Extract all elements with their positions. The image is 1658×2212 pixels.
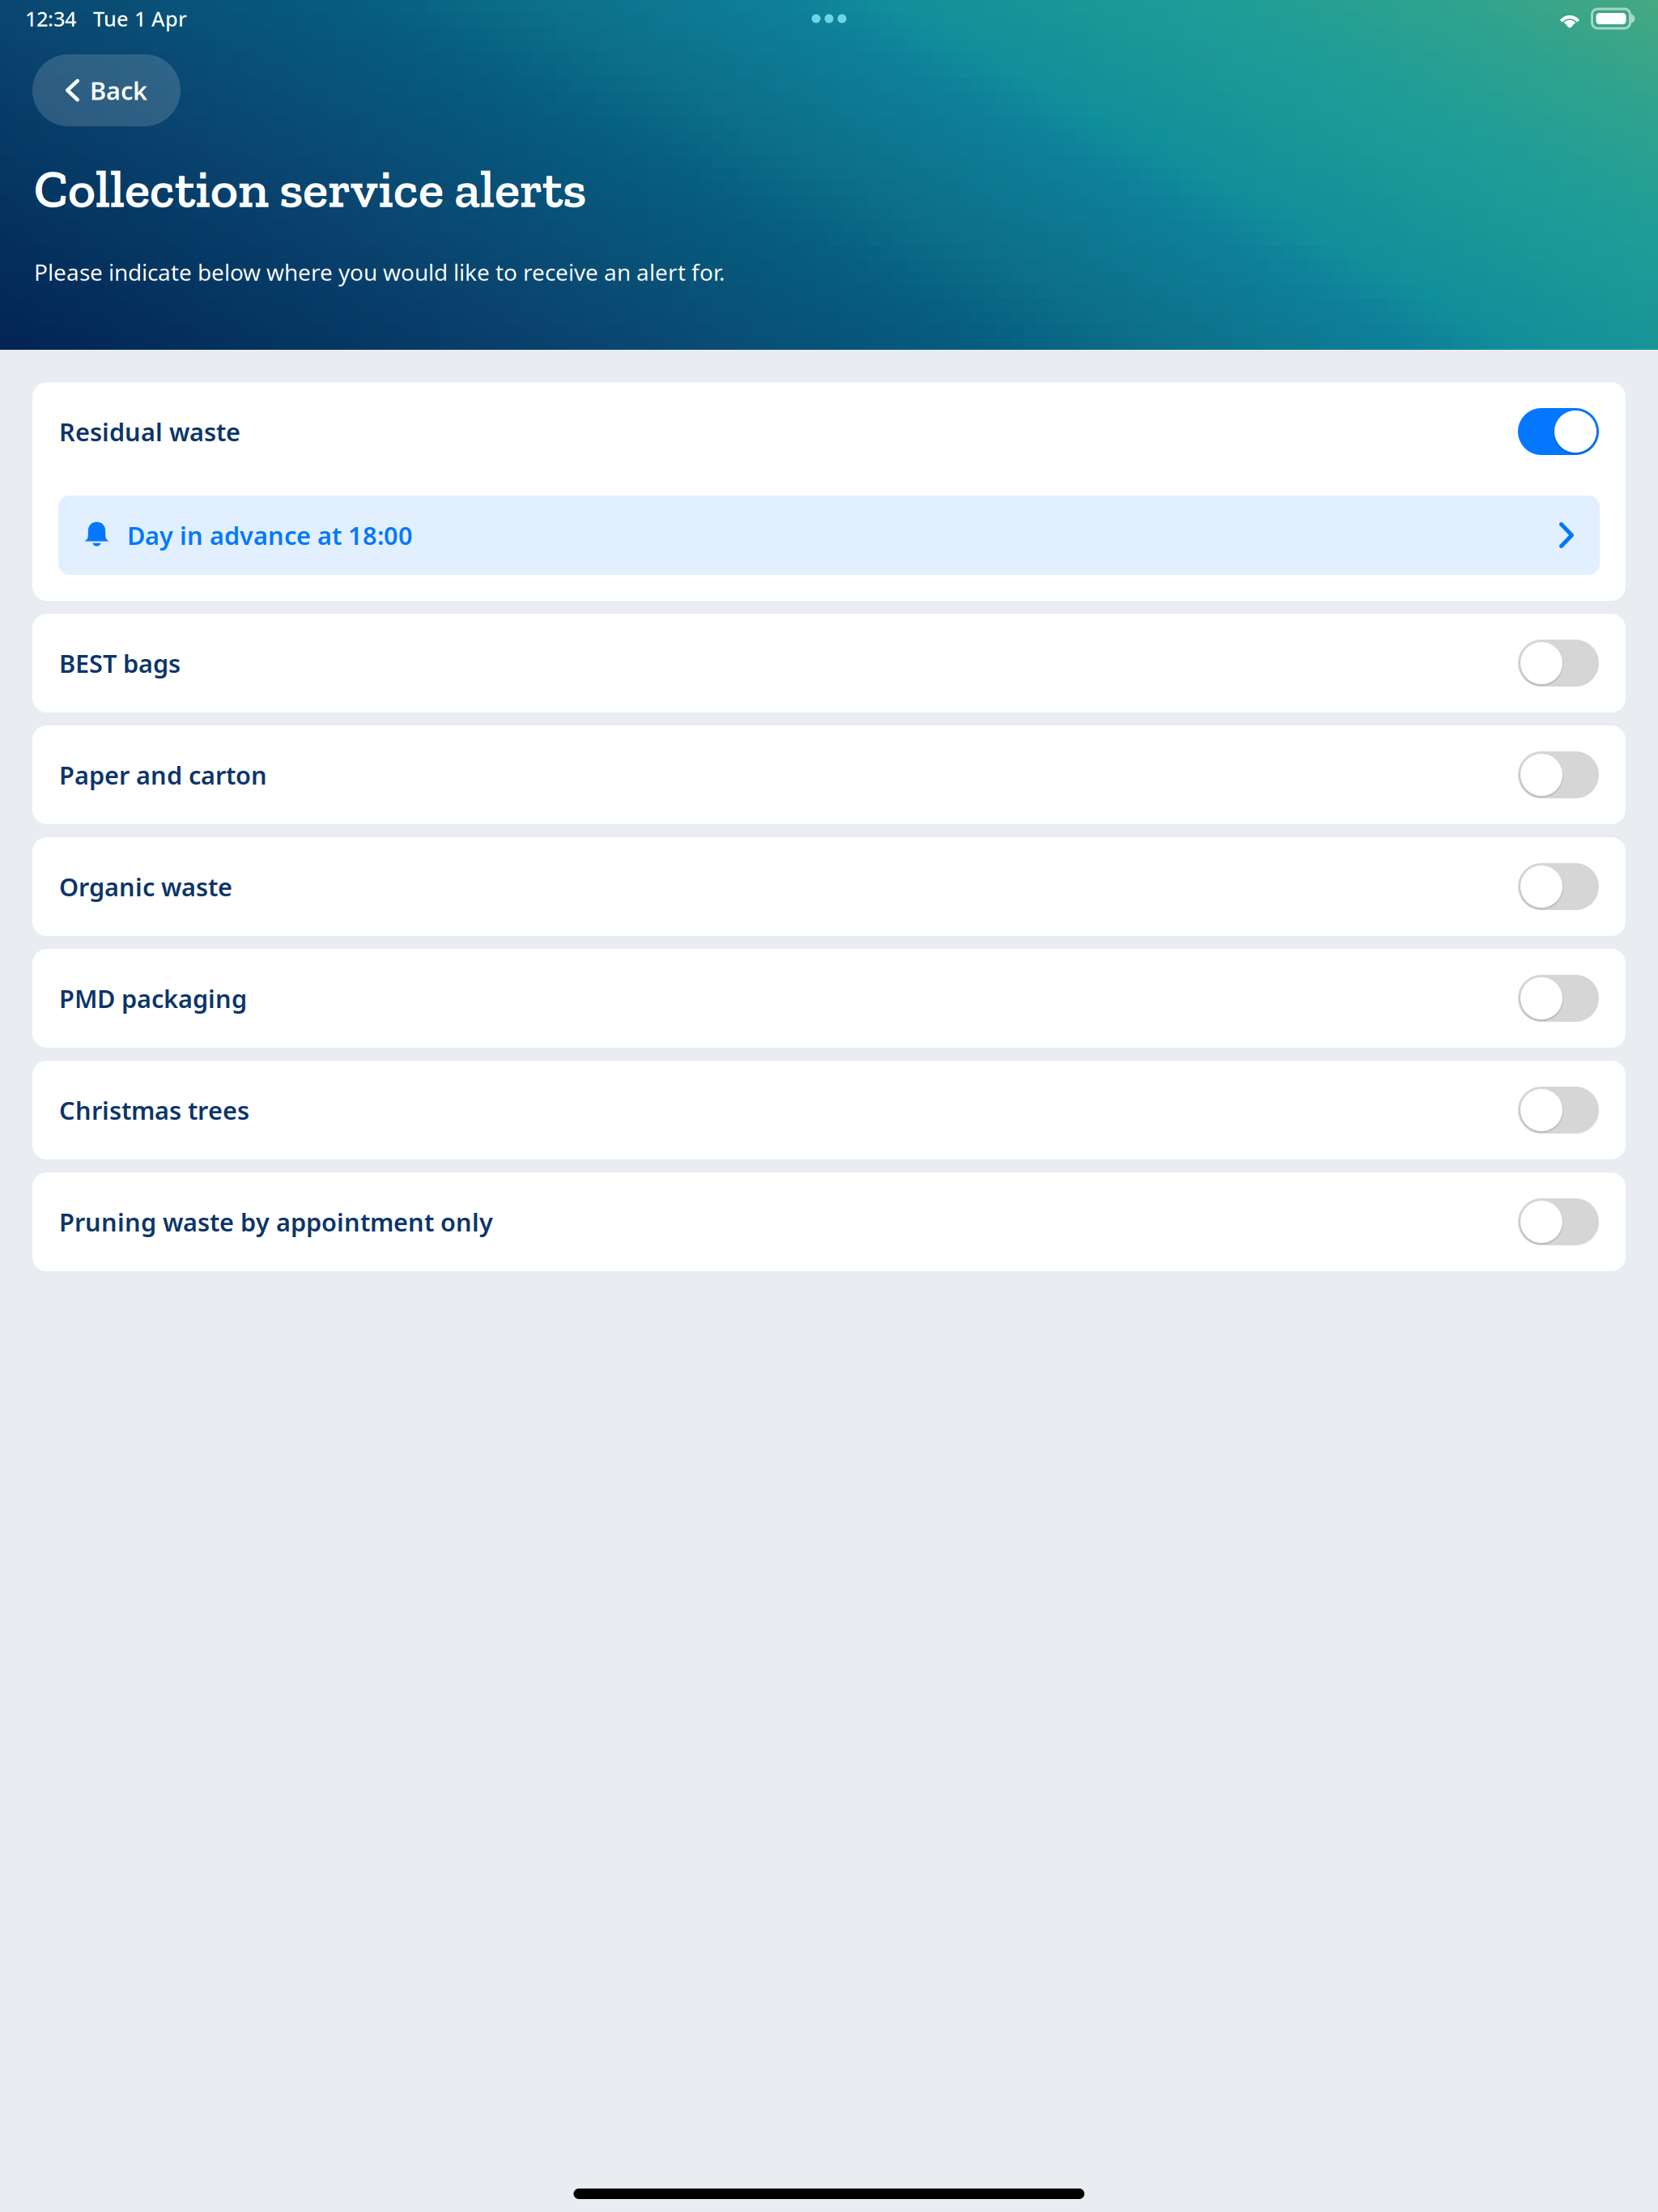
staticText: Christmas trees [59, 1094, 249, 1126]
staticText: Residual waste [59, 415, 240, 448]
button[interactable]: Paper and carton [32, 725, 1626, 824]
staticText: PMD packaging [59, 982, 247, 1015]
staticText: Tue 1 Apr [76, 5, 187, 32]
button[interactable]: Residual waste [32, 382, 1626, 481]
staticText: Paper and carton [59, 758, 267, 791]
button[interactable]: Back [32, 54, 181, 126]
button[interactable]: Pruning waste by appointment only [32, 1172, 1626, 1271]
staticText: 12:34 [25, 5, 76, 32]
staticText: Organic waste [59, 870, 232, 903]
staticText: BEST bags [59, 647, 181, 680]
button[interactable]: Day in advance at 18:00 [58, 496, 1600, 575]
button[interactable]: PMD packaging [32, 949, 1626, 1048]
button[interactable]: BEST bags [32, 614, 1626, 713]
button[interactable]: Christmas trees [32, 1061, 1626, 1159]
button[interactable]: Organic waste [32, 837, 1626, 936]
staticText: Collection service alerts [34, 157, 586, 221]
staticText: Day in advance at 18:00 [127, 519, 413, 552]
staticText: Pruning waste by appointment only [59, 1205, 493, 1238]
staticText: Please indicate below where you would li… [34, 257, 725, 287]
staticText: Back [90, 74, 147, 107]
